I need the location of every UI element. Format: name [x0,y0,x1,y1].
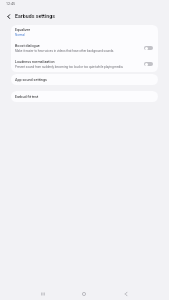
staticText: Earbuds settings [15,13,56,19]
staticText: 12:45 [6,2,15,6]
staticText: Loudness normalization [15,60,55,64]
button[interactable]: App sound settings [11,74,158,85]
staticText: Earbud fit test [15,95,39,99]
button[interactable]: Toggle [144,62,153,66]
button[interactable]: Toggle [144,46,153,50]
button[interactable]: Home [74,288,94,300]
button[interactable]: Navigate up [0,9,15,23]
button[interactable]: Recent apps [33,288,53,300]
button[interactable]: Back [116,288,136,300]
button[interactable]: Equalizer [11,25,158,40]
button[interactable]: Boost dialogue [11,40,158,56]
button[interactable]: Earbud fit test [11,91,158,102]
staticText: Normal [15,33,25,37]
staticText: Equalizer [15,28,31,32]
staticText: App sound settings [15,78,47,82]
button[interactable]: Loudness normalization [11,56,158,72]
staticText: Make it easier to hear voices in videos … [15,49,115,53]
staticText: Prevent sound from suddenly becoming too… [15,65,124,69]
staticText: Boost dialogue [15,44,40,48]
